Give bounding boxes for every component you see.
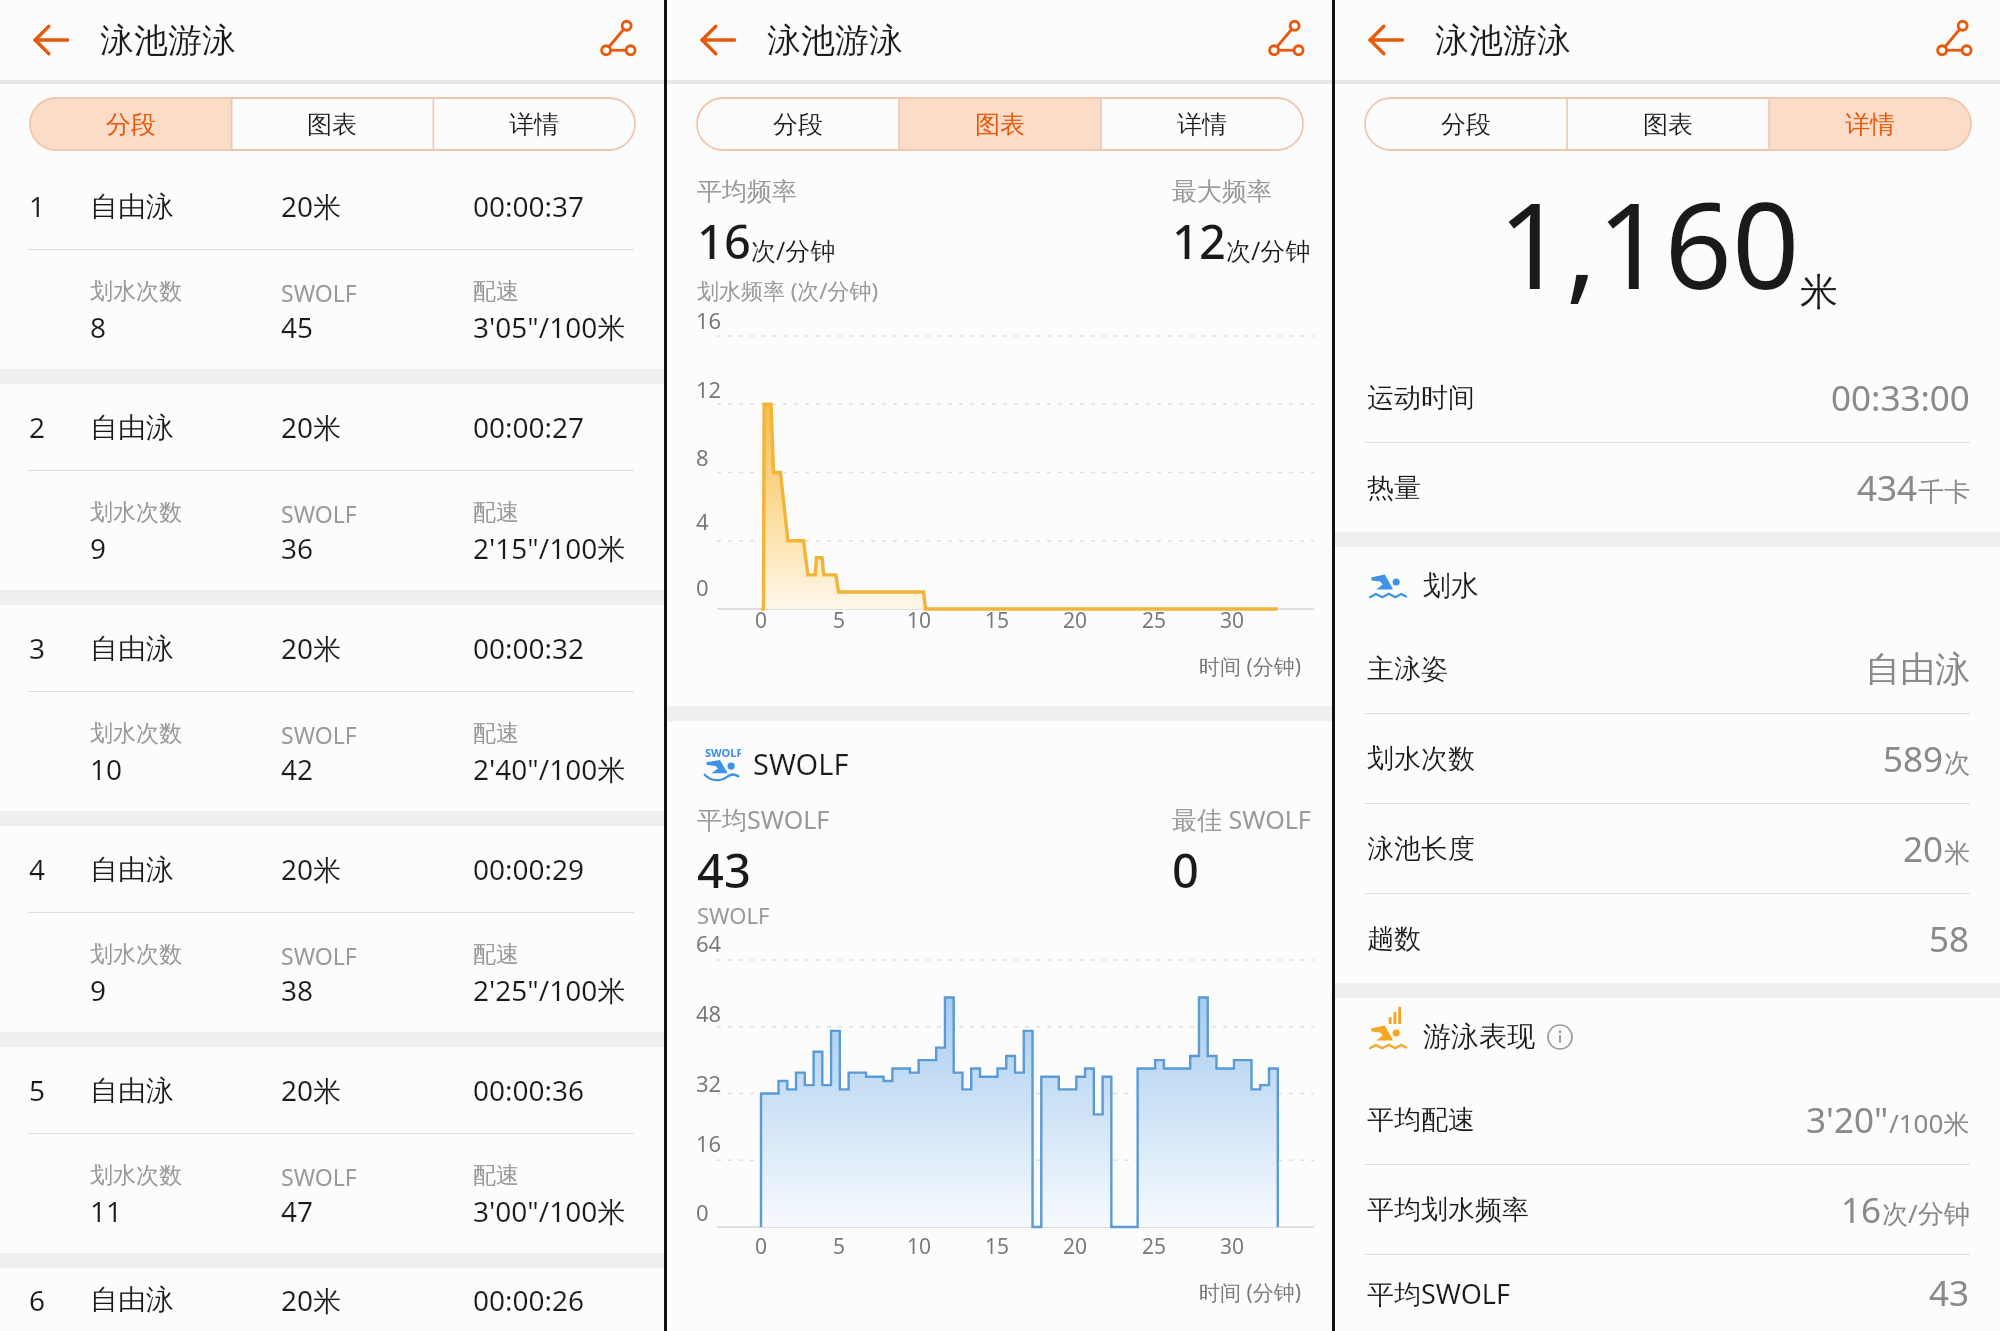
staticText: 2'40"/100米 [473,750,626,788]
staticText: 00:00:26 [473,1281,585,1319]
staticText: 2'15"/100米 [473,529,626,567]
staticText: 00:00:37 [473,187,585,225]
staticText: 分段 [773,109,823,140]
button[interactable]: 运动时间 [1335,353,2000,442]
staticText: 0 [696,572,709,602]
staticText: 20米 [281,408,342,446]
button[interactable]: 2 [0,384,664,470]
button[interactable]: 3 [0,605,664,691]
staticText: 0 [1172,838,1199,902]
button[interactable]: Share [1254,0,1332,84]
staticText: 平均SWOLF [1367,1275,1510,1312]
staticText: 最佳 SWOLF [1172,802,1311,836]
staticText: 次/分钟 [1226,233,1311,267]
staticText: 划水次数 [90,277,182,306]
button[interactable]: Share [1922,0,2000,84]
staticText: 00:00:29 [473,850,585,888]
staticText: 12 [696,374,722,404]
button[interactable]: 图表 [899,98,1101,150]
staticText: 15 [985,606,1010,635]
staticText: 20米 [281,629,342,667]
staticText: 图表 [307,109,357,140]
staticText: SWOLF [281,498,357,529]
staticText: 划水次数 [90,498,182,527]
staticText: 6 [29,1281,46,1319]
button[interactable]: Info [1547,1024,1573,1050]
button[interactable]: 图表 [1567,98,1769,150]
staticText: 米 [1800,268,1838,316]
staticText: 配速 [473,498,519,527]
staticText: 5 [29,1071,46,1109]
staticText: 分段 [1441,109,1491,140]
staticText: SWOLF [753,744,849,783]
button[interactable]: 详情 [433,98,635,150]
button[interactable]: 主泳姿 [1335,624,2000,713]
button[interactable]: 5 [0,1047,664,1133]
staticText: 运动时间 [1367,381,1475,415]
staticText: 16 [696,1128,722,1158]
staticText: 36 [281,529,314,567]
staticText: 38 [281,971,314,1009]
staticText: 8 [696,442,709,472]
staticText: 图表 [1643,109,1693,140]
staticText: 20米 [281,1281,342,1319]
staticText: 划水次数 [1367,742,1475,776]
button[interactable]: 平均配速 [1335,1075,2000,1164]
staticText: SWOLF [705,745,741,760]
staticText: 3'20" [1806,1096,1889,1144]
button[interactable]: 1 [0,163,664,249]
staticText: 3 [29,629,46,667]
staticText: 配速 [473,719,519,748]
button[interactable]: 详情 [1769,98,1971,150]
staticText: 分段 [106,109,156,140]
staticText: 30 [1220,1232,1245,1261]
staticText: 42 [281,750,314,788]
staticText: 自由泳 [90,410,174,445]
staticText: 配速 [473,940,519,969]
staticText: 15 [985,1232,1010,1261]
staticText: 00:33:00 [1831,374,1970,422]
staticText: 11 [90,1192,123,1230]
staticText: 自由泳 [90,189,174,224]
button[interactable]: Back [0,0,98,84]
staticText: 图表 [975,109,1025,140]
staticText: SWOLF [697,900,770,930]
staticText: 30 [1220,606,1245,635]
staticText: 12 [1172,209,1226,273]
button[interactable]: 划水次数 [1335,714,2000,803]
staticText: 4 [696,506,709,536]
button[interactable]: Back [667,0,765,84]
button[interactable]: 详情 [1101,98,1303,150]
staticText: 48 [696,998,722,1028]
button[interactable]: 趟数 [1335,894,2000,983]
staticText: 平均SWOLF [697,802,830,836]
staticText: 游泳表现 [1423,1019,1535,1054]
staticText: 自由泳 [1865,647,1970,691]
staticText: 千卡 [1918,476,1970,509]
button[interactable]: 泳池长度 [1335,804,2000,893]
staticText: 8 [90,308,107,346]
button[interactable]: 4 [0,826,664,912]
staticText: 次/分钟 [751,233,836,267]
staticText: 自由泳 [90,1282,174,1317]
button[interactable]: 分段 [30,98,231,150]
staticText: 平均划水频率 [1367,1193,1529,1227]
staticText: 16 [1841,1186,1882,1234]
button[interactable]: 平均SWOLF [1335,1255,2000,1331]
button[interactable]: Share [586,0,664,84]
staticText: 47 [281,1192,314,1230]
staticText: SWOLF [281,940,357,971]
button[interactable]: Back [1335,0,1433,84]
staticText: 泳池游泳 [1435,19,1571,62]
button[interactable]: 分段 [1365,98,1567,150]
button[interactable]: 平均划水频率 [1335,1165,2000,1254]
button[interactable]: 图表 [231,98,433,150]
staticText: 58 [1929,915,1970,963]
staticText: 20 [1903,825,1944,873]
staticText: 时间 (分钟) [1199,1278,1302,1307]
button[interactable]: 分段 [697,98,899,150]
staticText: 主泳姿 [1367,652,1448,686]
staticText: 589 [1883,735,1944,783]
button[interactable]: 热量 [1335,443,2000,532]
button[interactable]: 6 [0,1268,664,1331]
